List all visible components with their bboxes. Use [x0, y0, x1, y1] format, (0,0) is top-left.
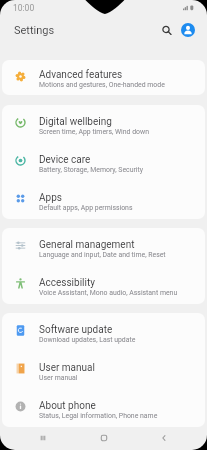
staticText: User manual: [39, 374, 78, 382]
button[interactable]: User manual: [2, 351, 205, 389]
button[interactable]: Home: [87, 426, 121, 450]
button[interactable]: General management: [2, 228, 205, 266]
button[interactable]: Account: [178, 20, 198, 40]
staticText: Voice Assistant, Mono audio, Assistant m…: [39, 289, 178, 297]
staticText: Battery, Storage, Memory, Security: [39, 166, 143, 174]
staticText: Download updates, Last update: [39, 336, 136, 344]
button[interactable]: Software update: [2, 313, 205, 351]
staticText: User manual: [39, 362, 95, 374]
staticText: Device care: [39, 154, 91, 166]
button[interactable]: Device care: [2, 143, 205, 181]
staticText: Default apps, App permissions: [39, 204, 133, 212]
staticText: Digital wellbeing: [39, 116, 112, 128]
staticText: Software update: [39, 324, 113, 336]
staticText: Language and input, Date and time, Reset: [39, 251, 166, 259]
button[interactable]: Search: [156, 20, 176, 40]
staticText: General management: [39, 239, 135, 251]
staticText: Motions and gestures, One-handed mode: [39, 81, 165, 89]
staticText: Settings: [14, 24, 55, 37]
button[interactable]: About phone: [2, 389, 205, 427]
staticText: Advanced features: [39, 69, 123, 81]
button[interactable]: Accessibility: [2, 266, 205, 304]
staticText: Apps: [39, 192, 62, 204]
staticText: About phone: [39, 400, 96, 412]
button[interactable]: Digital wellbeing: [2, 105, 205, 143]
staticText: Status, Legal information, Phone name: [39, 412, 158, 420]
staticText: 10:00: [13, 3, 35, 13]
button[interactable]: Apps: [2, 181, 205, 219]
button[interactable]: Recents: [26, 426, 60, 450]
staticText: Screen time, App timers, Wind down: [39, 128, 149, 136]
button[interactable]: Back: [147, 426, 181, 450]
staticText: Accessibility: [39, 277, 95, 289]
button[interactable]: Advanced features: [2, 60, 205, 95]
